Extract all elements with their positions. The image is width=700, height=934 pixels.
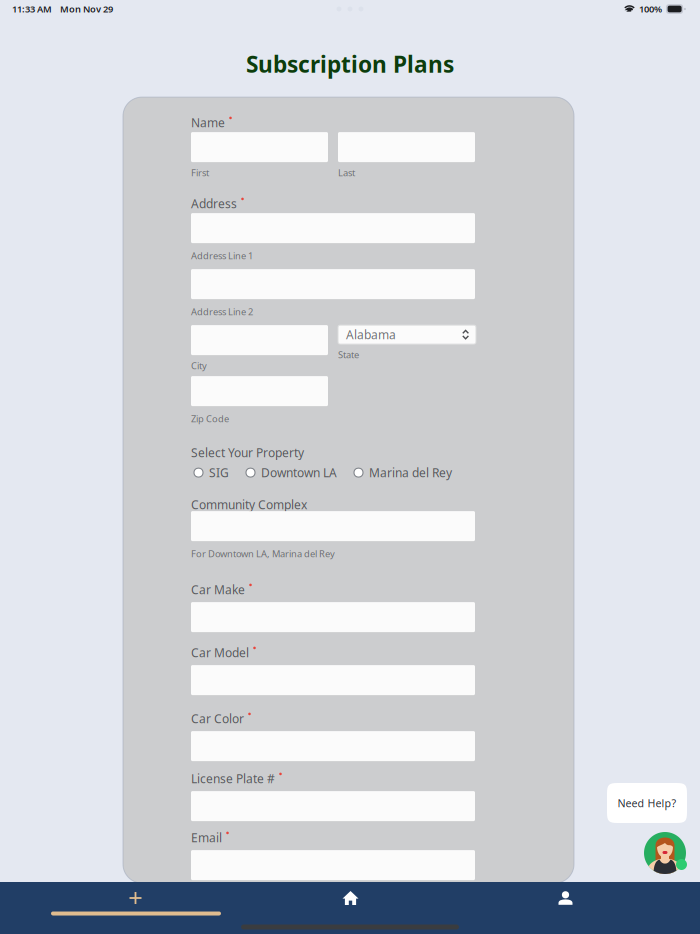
staticText: Marina del Rey (369, 465, 452, 480)
staticText: 11:33 AM (12, 3, 52, 15)
button[interactable]: SIG (194, 465, 229, 480)
staticText: For Downtown LA, Marina del Rey (191, 547, 335, 560)
staticText: Last (338, 166, 355, 179)
staticText: 100% (639, 3, 662, 15)
staticText: Zip Code (191, 412, 229, 425)
button[interactable]: Add (28, 890, 243, 905)
staticText: SIG (209, 465, 229, 480)
staticText: Email (191, 830, 222, 845)
staticText: Alabama (346, 327, 396, 342)
staticText: Address (191, 196, 237, 211)
staticText: Select Your Property (191, 445, 304, 460)
staticText: Downtown LA (261, 465, 337, 480)
button[interactable]: Profile (458, 890, 673, 905)
staticText: City (191, 359, 207, 372)
staticText: Need Help? (617, 796, 676, 810)
staticText: Address Line 1 (191, 249, 253, 262)
staticText: State (338, 348, 359, 361)
button[interactable]: Downtown LA (246, 465, 337, 480)
button[interactable]: Home (243, 890, 458, 905)
staticText: Community Complex (191, 497, 307, 512)
staticText: Name (191, 115, 225, 130)
button[interactable]: Chat with support (644, 832, 687, 875)
staticText: First (191, 166, 209, 179)
staticText: Car Color (191, 711, 244, 726)
staticText: Subscription Plans (246, 49, 454, 79)
staticText: Mon Nov 29 (60, 3, 113, 15)
button[interactable]: Need Help? (607, 783, 687, 823)
staticText: Address Line 2 (191, 305, 253, 318)
staticText: Car Make (191, 582, 245, 597)
staticText: Car Model (191, 645, 249, 660)
staticText: License Plate # (191, 771, 275, 786)
button[interactable]: Alabama (338, 325, 476, 344)
button[interactable]: Marina del Rey (354, 465, 452, 480)
